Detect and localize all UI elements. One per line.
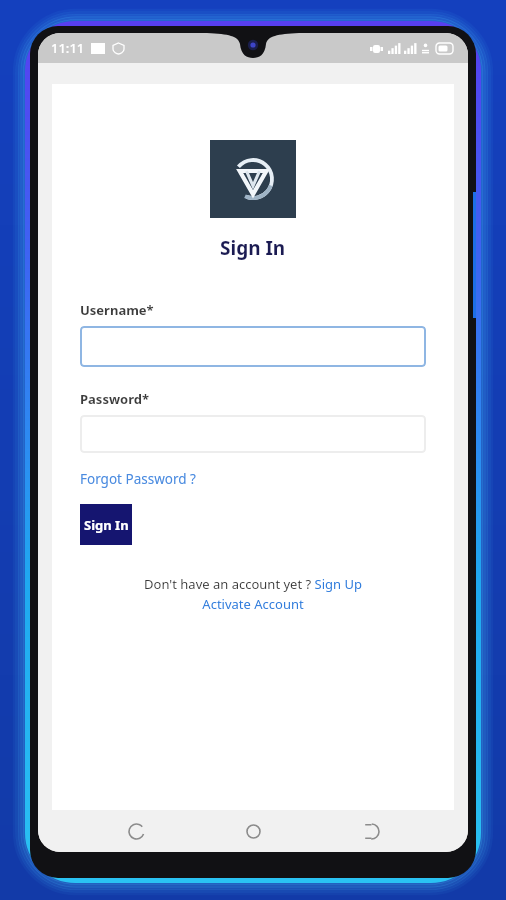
staticText: Password* — [80, 390, 149, 408]
staticText: Username* — [80, 301, 154, 319]
staticText: Sign In — [220, 235, 286, 261]
staticText: 11:11 — [51, 39, 85, 57]
button[interactable]: Back — [351, 811, 391, 851]
staticText: Forgot Password ? — [80, 470, 196, 488]
button[interactable]: Recents — [116, 811, 156, 851]
button[interactable]: Forgot Password ? — [80, 470, 196, 488]
button[interactable] — [80, 415, 426, 453]
staticText: Sign In — [84, 516, 129, 534]
button[interactable] — [80, 326, 426, 367]
button[interactable]: Home — [233, 811, 273, 851]
button[interactable]: Don't have an account yet ? Sign Up Acti… — [80, 575, 426, 613]
button[interactable]: Sign In — [80, 504, 132, 545]
